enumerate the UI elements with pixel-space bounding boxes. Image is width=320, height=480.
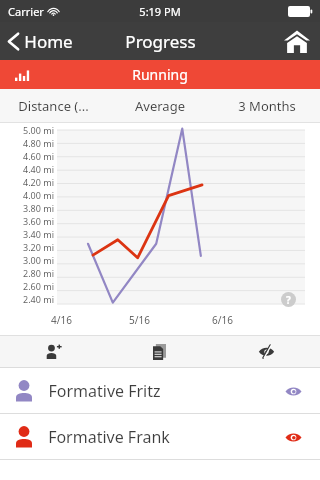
staticText: 3.20 mi — [23, 241, 54, 253]
staticText: Distance (... — [18, 97, 89, 115]
staticText: 3.60 mi — [23, 215, 54, 227]
staticText: 4.00 mi — [23, 189, 54, 201]
staticText: 5.00 mi — [23, 124, 54, 136]
button[interactable]: Toggle visibility — [280, 427, 306, 447]
staticText: 3.40 mi — [23, 228, 54, 240]
staticText: 4.60 mi — [23, 150, 54, 162]
staticText: 4.40 mi — [23, 163, 54, 175]
staticText: Home — [24, 30, 73, 53]
staticText: 5/16 — [129, 313, 150, 327]
button[interactable]: Help — [281, 292, 296, 307]
button[interactable]: Formative Frank — [0, 414, 320, 459]
staticText: Formative Fritz — [48, 380, 161, 402]
button[interactable]: Toggle visibility — [280, 381, 306, 401]
staticText: 4.20 mi — [23, 176, 54, 188]
button[interactable]: Add person — [0, 336, 106, 367]
button[interactable]: Notes — [106, 336, 213, 367]
staticText: 3.80 mi — [23, 202, 54, 214]
staticText: 4.80 mi — [23, 137, 54, 149]
staticText: 2.80 mi — [23, 267, 54, 279]
staticText: 3.00 mi — [23, 254, 54, 266]
staticText: 5:19 PM — [139, 4, 181, 19]
staticText: 4/16 — [51, 313, 72, 327]
button[interactable]: Hide — [213, 336, 320, 367]
staticText: 2.40 mi — [23, 293, 54, 305]
button[interactable]: Formative Fritz — [0, 368, 320, 413]
button[interactable]: 3 Months — [213, 89, 320, 122]
staticText: 3 Months — [238, 97, 296, 115]
button[interactable]: Home — [0, 22, 81, 60]
staticText: Progress — [125, 30, 196, 53]
staticText: Running — [132, 65, 188, 84]
button[interactable]: Distance (... — [0, 89, 106, 122]
button[interactable]: Running — [0, 60, 320, 89]
staticText: 2.60 mi — [23, 280, 54, 292]
staticText: Formative Frank — [48, 426, 170, 448]
staticText: ? — [286, 293, 291, 307]
staticText: Average — [135, 97, 185, 115]
staticText: Carrier — [8, 4, 44, 19]
staticText: 6/16 — [212, 313, 233, 327]
button[interactable]: Home — [274, 22, 320, 60]
button[interactable]: Average — [106, 89, 213, 122]
